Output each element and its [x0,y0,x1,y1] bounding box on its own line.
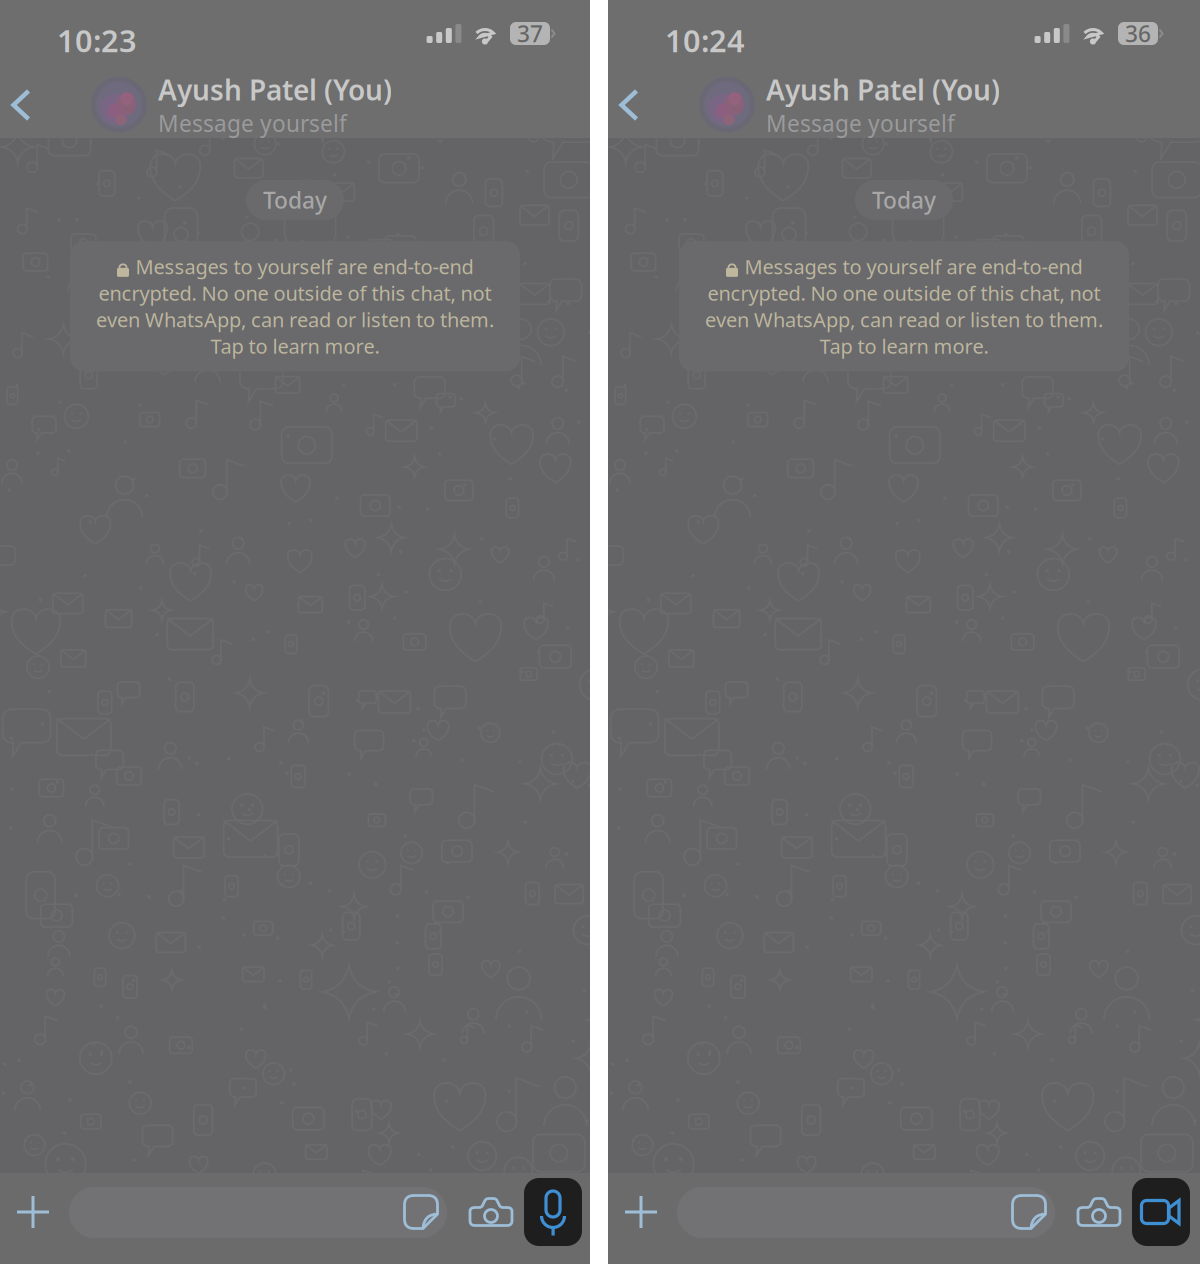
staticText: Ayush Patel (You) [158,71,392,108]
button[interactable]: Ayush Patel (You) [699,71,1000,138]
staticText: Message yourself [158,108,347,138]
staticText: Message yourself [766,108,955,138]
button[interactable]: Ayush Patel (You) [91,71,392,138]
button[interactable]: Stickers [396,1187,446,1237]
button[interactable]: Voice message [524,1178,582,1246]
button[interactable]: Attach [614,1185,668,1239]
button[interactable]: Stickers [1004,1187,1054,1237]
staticText: 10:24 [665,20,745,61]
button[interactable]: Back [0,76,43,134]
button[interactable]: Messages to yourself are end-to-end [70,241,520,371]
button[interactable]: Messages to yourself are end-to-end [679,241,1129,371]
staticText: Today [872,185,936,215]
staticText: Today [263,185,327,215]
staticText: Messages to yourself are end-to-end [135,253,473,280]
staticText: 36 [1125,18,1151,48]
staticText: Tap to learn more. [819,333,988,359]
button[interactable]: Back [607,76,651,134]
staticText: 37 [517,18,543,48]
staticText: even WhatsApp, can read or listen to the… [96,306,494,333]
staticText: Ayush Patel (You) [766,71,1000,108]
staticText: encrypted. No one outside of this chat, … [98,280,491,306]
button[interactable]: Camera [1072,1187,1126,1237]
button[interactable]: Camera [464,1187,518,1237]
staticText: even WhatsApp, can read or listen to the… [705,306,1103,333]
button[interactable]: Video message [1132,1178,1190,1246]
staticText: Messages to yourself are end-to-end [744,253,1082,280]
staticText: encrypted. No one outside of this chat, … [707,280,1100,306]
staticText: 10:23 [57,20,137,61]
button[interactable]: Attach [6,1185,60,1239]
staticText: Tap to learn more. [210,333,379,359]
